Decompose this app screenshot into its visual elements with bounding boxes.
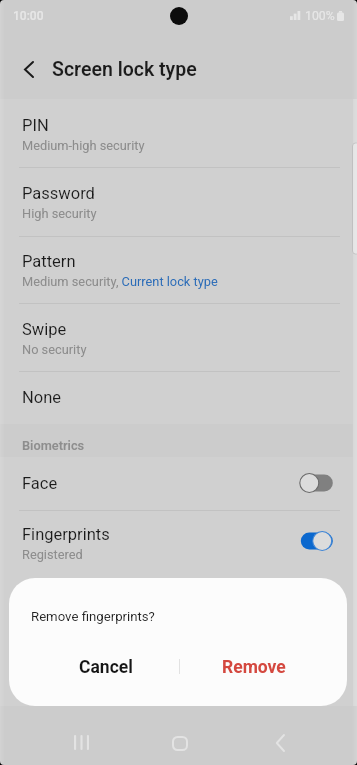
staticText: No security: [22, 342, 87, 357]
staticText: Screen lock type: [52, 58, 197, 81]
staticText: Medium security, Current lock type: [22, 274, 218, 289]
button[interactable]: Password: [0, 166, 357, 222]
staticText: Biometrics: [22, 438, 85, 453]
staticText: None: [22, 388, 62, 407]
staticText: Password: [22, 184, 95, 203]
staticText: Registered: [22, 547, 83, 562]
button[interactable]: Turn on: [299, 472, 337, 494]
button[interactable]: Back: [258, 721, 302, 765]
staticText: Remove: [222, 657, 286, 678]
button[interactable]: Fingerprints: [0, 515, 357, 563]
staticText: Swipe: [22, 320, 67, 339]
staticText: PIN: [22, 116, 49, 135]
button[interactable]: Cancel: [33, 645, 179, 689]
button[interactable]: Pattern: [0, 234, 357, 290]
staticText: Face: [22, 474, 58, 493]
staticText: Fingerprints: [22, 525, 110, 544]
button[interactable]: None: [0, 370, 357, 422]
staticText: Medium-high security: [22, 138, 145, 153]
button[interactable]: Home: [158, 721, 202, 765]
staticText: 10:00: [13, 9, 44, 23]
button[interactable]: Turn off: [299, 530, 337, 552]
staticText: Pattern: [22, 252, 76, 271]
button[interactable]: Recent apps: [59, 720, 103, 764]
staticText: High security: [22, 206, 97, 221]
staticText: 100%: [305, 9, 335, 23]
staticText: Cancel: [79, 657, 133, 678]
staticText: Remove fingerprints?: [31, 609, 155, 624]
button[interactable]: Face: [0, 464, 357, 506]
button[interactable]: Swipe: [0, 302, 357, 358]
button[interactable]: PIN: [0, 98, 357, 154]
button[interactable]: Remove: [181, 645, 327, 689]
button[interactable]: Back: [13, 53, 45, 85]
